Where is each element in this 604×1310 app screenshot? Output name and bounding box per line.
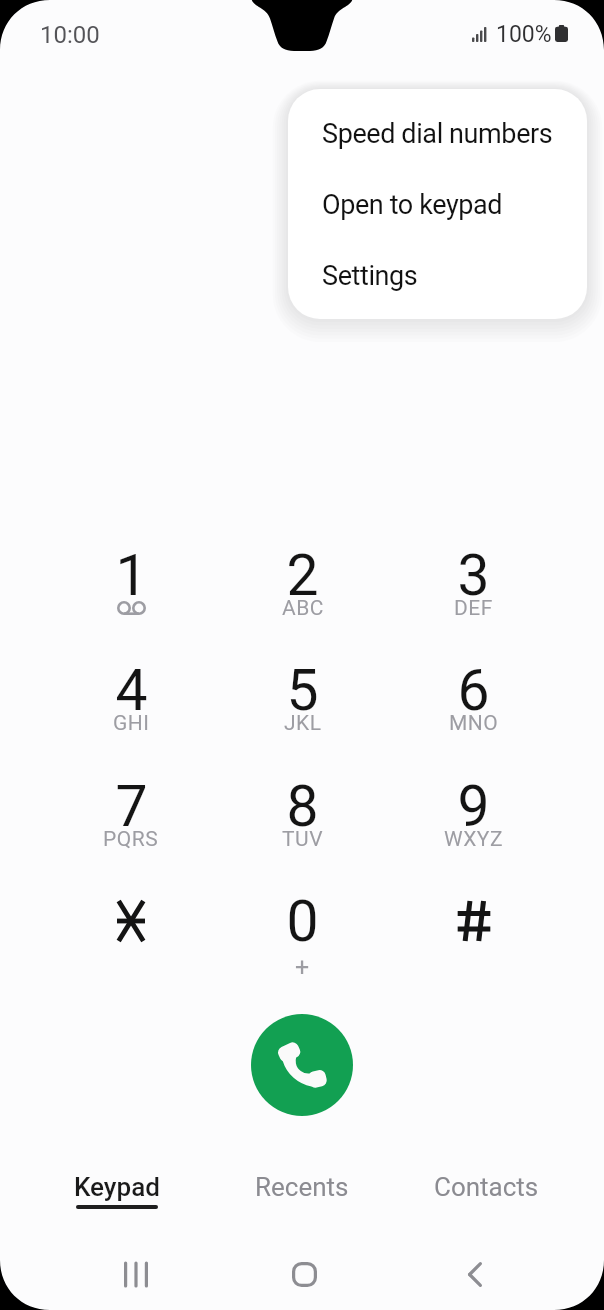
staticText: DEF — [454, 596, 493, 621]
staticText: 3 — [457, 542, 490, 609]
button[interactable]: 9 — [388, 747, 559, 861]
staticText: 9 — [457, 773, 490, 840]
staticText: MNO — [449, 711, 499, 736]
staticText: JKL — [284, 711, 322, 736]
button[interactable]: 2 — [217, 516, 388, 630]
staticText: PQRS — [103, 827, 159, 852]
button[interactable]: Speed dial numbers — [288, 98, 587, 169]
button[interactable]: Recents — [209, 1155, 394, 1219]
staticText: WXYZ — [444, 827, 503, 852]
button[interactable]: Contacts — [394, 1155, 579, 1219]
button[interactable]: Recent apps — [79, 1238, 192, 1310]
button[interactable]: 1 — [45, 516, 217, 630]
staticText: Keypad — [74, 1172, 160, 1202]
button[interactable]: 0 — [217, 862, 388, 968]
button[interactable]: Call — [251, 1014, 353, 1116]
staticText: 100% — [496, 21, 552, 48]
staticText: Settings — [322, 260, 418, 292]
button[interactable]: 7 — [45, 747, 217, 861]
button[interactable]: 6 — [388, 631, 559, 745]
staticText: 8 — [286, 773, 319, 840]
button[interactable]: Back — [418, 1238, 531, 1310]
staticText: Open to keypad — [322, 189, 503, 221]
staticText: ABC — [282, 596, 324, 621]
button[interactable]: Keypad — [25, 1155, 209, 1219]
button[interactable]: Settings — [288, 240, 587, 311]
button[interactable]: Open to keypad — [288, 169, 587, 240]
button[interactable] — [388, 862, 559, 968]
staticText: 7 — [115, 773, 148, 840]
staticText: GHI — [113, 711, 150, 736]
staticText: 10:00 — [40, 21, 100, 49]
staticText: 2 — [286, 542, 319, 609]
staticText: 0 — [286, 888, 319, 955]
staticText: 5 — [286, 657, 319, 724]
staticText: Recents — [255, 1172, 349, 1202]
staticText: TUV — [282, 827, 324, 852]
staticText: Speed dial numbers — [322, 118, 553, 150]
staticText: 6 — [457, 657, 490, 724]
button[interactable] — [45, 862, 217, 968]
button[interactable]: 4 — [45, 631, 217, 745]
staticText: 1 — [115, 542, 148, 609]
button[interactable]: 3 — [388, 516, 559, 630]
staticText: 4 — [115, 657, 148, 724]
button[interactable]: 5 — [217, 631, 388, 745]
staticText: + — [295, 953, 310, 982]
staticText: Contacts — [434, 1172, 539, 1202]
button[interactable]: 8 — [217, 747, 388, 861]
button[interactable]: Home — [248, 1238, 361, 1310]
